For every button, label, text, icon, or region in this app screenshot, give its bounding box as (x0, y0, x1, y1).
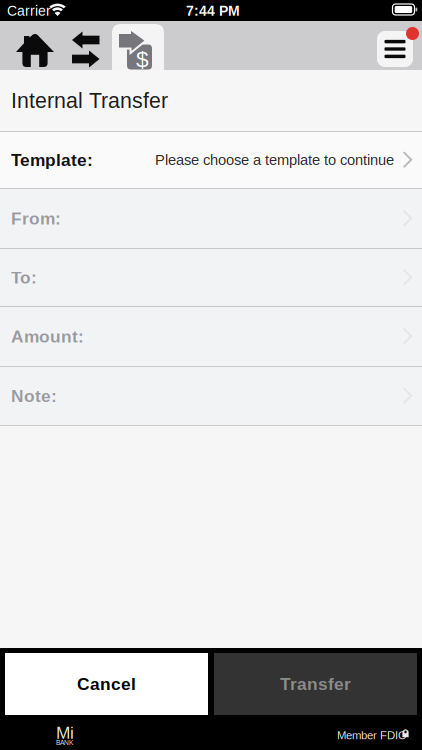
button[interactable]: From: (0, 189, 422, 248)
staticText: Note: (11, 386, 57, 406)
staticText: Transfer (280, 674, 351, 694)
button[interactable]: Template: (0, 132, 422, 188)
button[interactable]: Home (7, 26, 63, 75)
button[interactable]: Menu (374, 24, 416, 66)
staticText: Member FDIC (337, 729, 406, 742)
button[interactable]: Internal Transfer (112, 25, 164, 74)
button[interactable]: Amount: (0, 307, 422, 366)
staticText: Amount: (11, 327, 84, 346)
staticText: Template: (11, 150, 93, 170)
staticText: Mi (56, 723, 74, 742)
button[interactable]: To: (0, 249, 422, 306)
staticText: Please choose a template to continue (155, 152, 394, 168)
button[interactable]: Note: (0, 367, 422, 425)
button[interactable]: Transfers (59, 25, 113, 74)
staticText: BANK (56, 739, 73, 746)
button[interactable]: Cancel (5, 653, 208, 715)
staticText: $ (136, 46, 149, 72)
staticText: To: (11, 268, 37, 287)
button[interactable]: Transfer (214, 653, 417, 715)
staticText: Cancel (77, 674, 136, 694)
staticText: Internal Transfer (11, 89, 168, 112)
staticText: 7:44 PM (186, 3, 240, 19)
staticText: Carrier (7, 3, 51, 19)
staticText: From: (11, 209, 61, 228)
